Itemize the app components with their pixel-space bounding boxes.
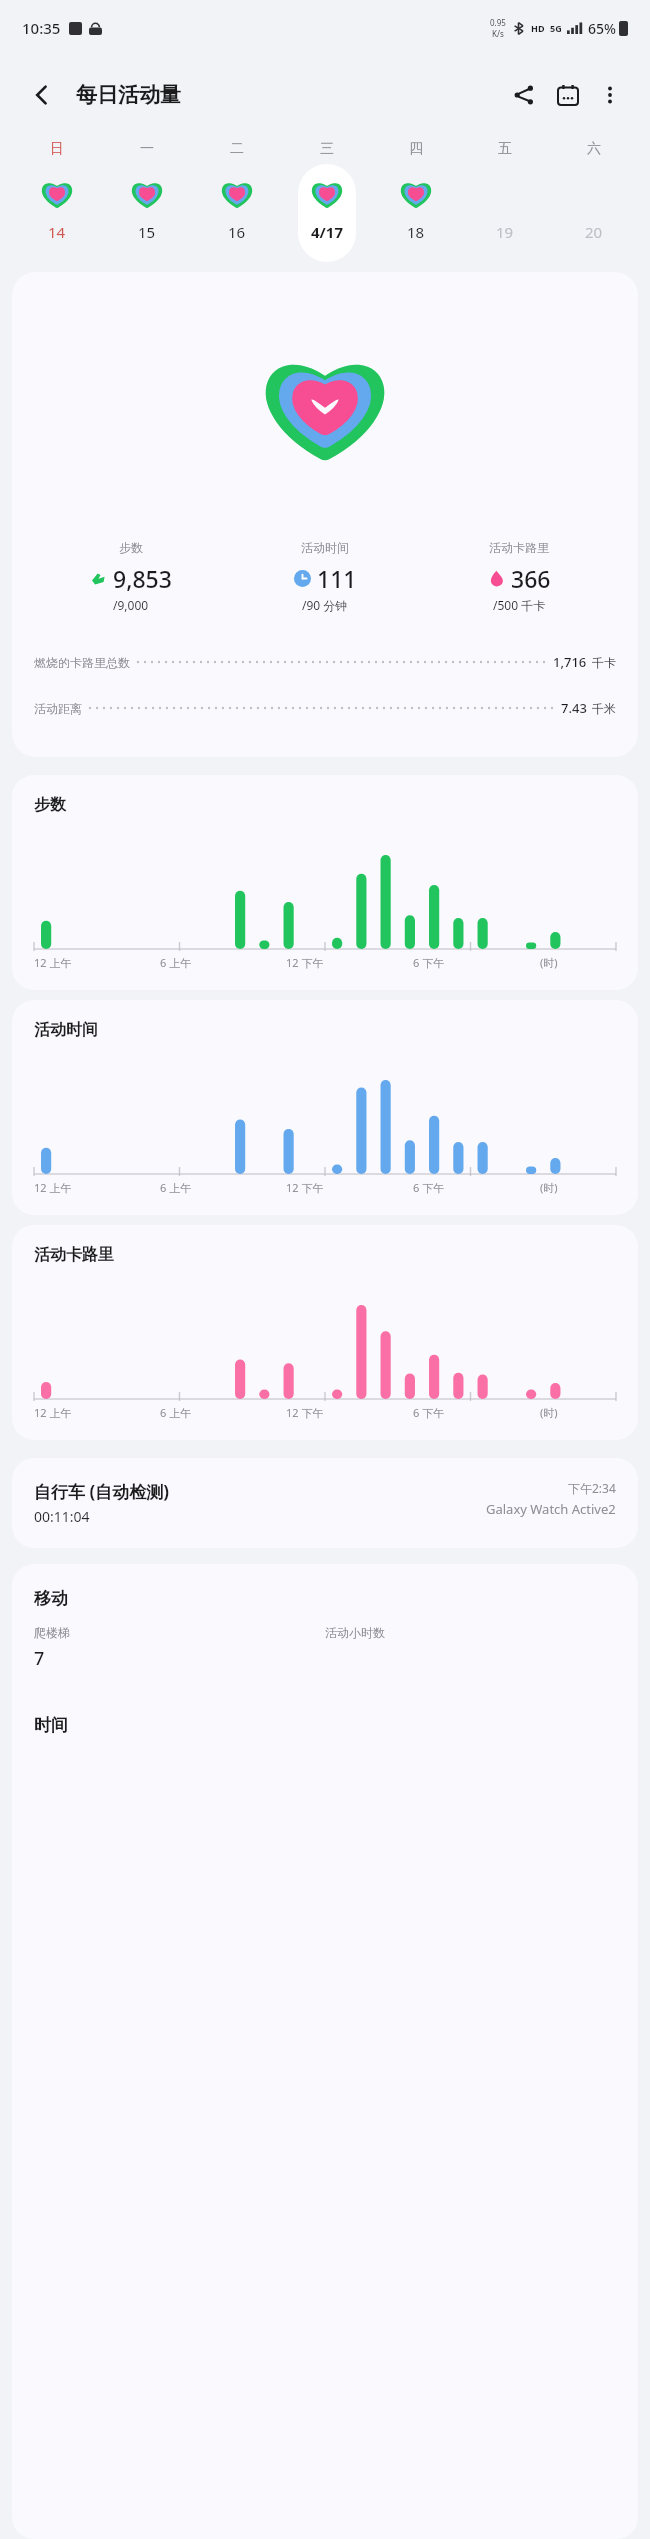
staticText: 6 上午: [160, 955, 192, 970]
staticText: 9,853: [113, 563, 172, 594]
staticText: 5G: [550, 22, 562, 34]
staticText: 自行车 (自动检测): [34, 1480, 169, 1503]
staticText: 活动时间: [301, 540, 349, 555]
staticText: HD: [531, 22, 545, 34]
staticText: 12 上午: [34, 955, 72, 970]
button[interactable]: 15: [118, 164, 176, 262]
staticText: (时): [540, 1180, 558, 1195]
staticText: 111: [317, 563, 357, 594]
staticText: 一: [140, 140, 154, 158]
staticText: 12 上午: [34, 1405, 72, 1420]
staticText: 活动时间: [34, 1020, 98, 1040]
staticText: 千米: [592, 701, 616, 716]
button[interactable]: More options: [590, 75, 630, 115]
button[interactable]: 步数: [12, 775, 638, 990]
staticText: 三: [320, 140, 334, 158]
staticText: 12 上午: [34, 1180, 72, 1195]
staticText: (时): [540, 955, 558, 970]
button[interactable]: 18: [387, 164, 445, 262]
staticText: 18: [407, 222, 425, 242]
staticText: 二: [230, 140, 244, 158]
staticText: K/s: [492, 28, 504, 39]
button[interactable]: 19: [476, 164, 534, 262]
staticText: 活动卡路里: [489, 540, 549, 555]
button[interactable]: Calendar: [546, 73, 590, 117]
staticText: 6 上午: [160, 1405, 192, 1420]
staticText: 12 下午: [286, 1180, 324, 1195]
staticText: Galaxy Watch Active2: [486, 1500, 616, 1518]
staticText: /9,000: [113, 597, 149, 613]
staticText: 4/17: [311, 222, 343, 242]
staticText: 移动: [34, 1588, 68, 1609]
staticText: 步数: [34, 795, 66, 815]
staticText: 6 下午: [413, 955, 445, 970]
staticText: 14: [48, 222, 66, 242]
staticText: 20: [585, 222, 603, 242]
staticText: 15: [138, 222, 156, 242]
staticText: 六: [587, 140, 601, 158]
button[interactable]: 活动卡路里: [12, 1225, 638, 1440]
staticText: 6 下午: [413, 1180, 445, 1195]
staticText: 下午2:34: [568, 1480, 616, 1496]
button[interactable]: 14: [28, 164, 86, 262]
staticText: 1,716: [553, 653, 587, 671]
staticText: 活动距离: [34, 701, 82, 716]
staticText: /90 分钟: [302, 597, 348, 613]
staticText: 爬楼梯: [34, 1625, 70, 1640]
button[interactable]: 4/17: [298, 164, 356, 262]
staticText: 千卡: [592, 655, 616, 670]
button[interactable]: 活动时间: [12, 1000, 638, 1215]
staticText: 活动卡路里: [34, 1245, 114, 1265]
staticText: 65%: [588, 19, 616, 38]
staticText: (时): [540, 1405, 558, 1420]
staticText: 时间: [34, 1715, 68, 1736]
staticText: 00:11:04: [34, 1507, 90, 1526]
button[interactable]: 移动: [12, 1564, 638, 2539]
staticText: 每日活动量: [76, 82, 181, 108]
staticText: 6 上午: [160, 1180, 192, 1195]
staticText: 10:35: [22, 18, 61, 38]
button[interactable]: 16: [208, 164, 266, 262]
button[interactable]: 20: [565, 164, 623, 262]
staticText: 12 下午: [286, 1405, 324, 1420]
staticText: 燃烧的卡路里总数: [34, 655, 130, 670]
staticText: 7.43: [561, 699, 587, 717]
staticText: 四: [409, 140, 423, 158]
staticText: 五: [498, 140, 512, 158]
staticText: 0.95: [490, 17, 506, 28]
staticText: 步数: [119, 540, 143, 555]
staticText: 16: [228, 222, 246, 242]
staticText: 12 下午: [286, 955, 324, 970]
staticText: 日: [50, 140, 64, 158]
staticText: 活动小时数: [325, 1625, 385, 1640]
button[interactable]: 自行车 (自动检测): [12, 1458, 638, 1548]
staticText: 19: [496, 222, 514, 242]
staticText: /500 千卡: [493, 597, 546, 613]
button[interactable]: Share: [502, 73, 546, 117]
staticText: 6 下午: [413, 1405, 445, 1420]
button[interactable]: 步数: [12, 272, 638, 757]
staticText: 7: [34, 1646, 45, 1671]
staticText: 366: [511, 563, 551, 594]
button[interactable]: Back: [20, 73, 64, 117]
